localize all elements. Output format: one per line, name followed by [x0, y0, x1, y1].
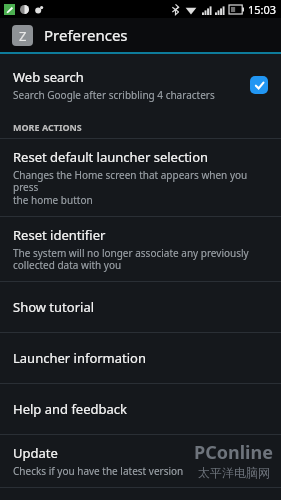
staticText: Preferences — [44, 25, 128, 45]
staticText: Checks if you have the latest version — [13, 464, 184, 478]
staticText: Changes the Home screen that appears whe… — [13, 168, 268, 207]
staticText: Search Google after scribbling 4 charact… — [13, 88, 215, 102]
staticText: Reset default launcher selection — [13, 148, 209, 166]
staticText: 太平洋电脑网 — [198, 465, 270, 480]
button[interactable]: Reset default launcher selection — [0, 139, 281, 216]
staticText: 15:03 — [248, 2, 277, 17]
staticText: PConline — [194, 440, 273, 465]
staticText: Show tutorial — [13, 298, 95, 316]
staticText: Web search — [13, 68, 84, 86]
staticText: MORE ACTIONS — [13, 121, 82, 133]
button[interactable]: Launcher information — [0, 333, 281, 383]
button[interactable]: Help and feedback — [0, 384, 281, 434]
staticText: Launcher information — [13, 349, 147, 367]
staticText: Update — [13, 444, 58, 462]
staticText: Z — [19, 27, 27, 45]
button[interactable]: Z — [0, 18, 281, 52]
staticText: Help and feedback — [13, 400, 127, 418]
other: Web search enabled — [250, 76, 268, 94]
staticText: The system will no longer associate any … — [13, 246, 249, 272]
button[interactable]: Show tutorial — [0, 282, 281, 332]
button[interactable]: Update — [0, 435, 281, 487]
button[interactable]: Web search — [0, 62, 281, 108]
staticText: Reset identifier — [13, 226, 106, 244]
button[interactable]: Reset identifier — [0, 217, 281, 281]
